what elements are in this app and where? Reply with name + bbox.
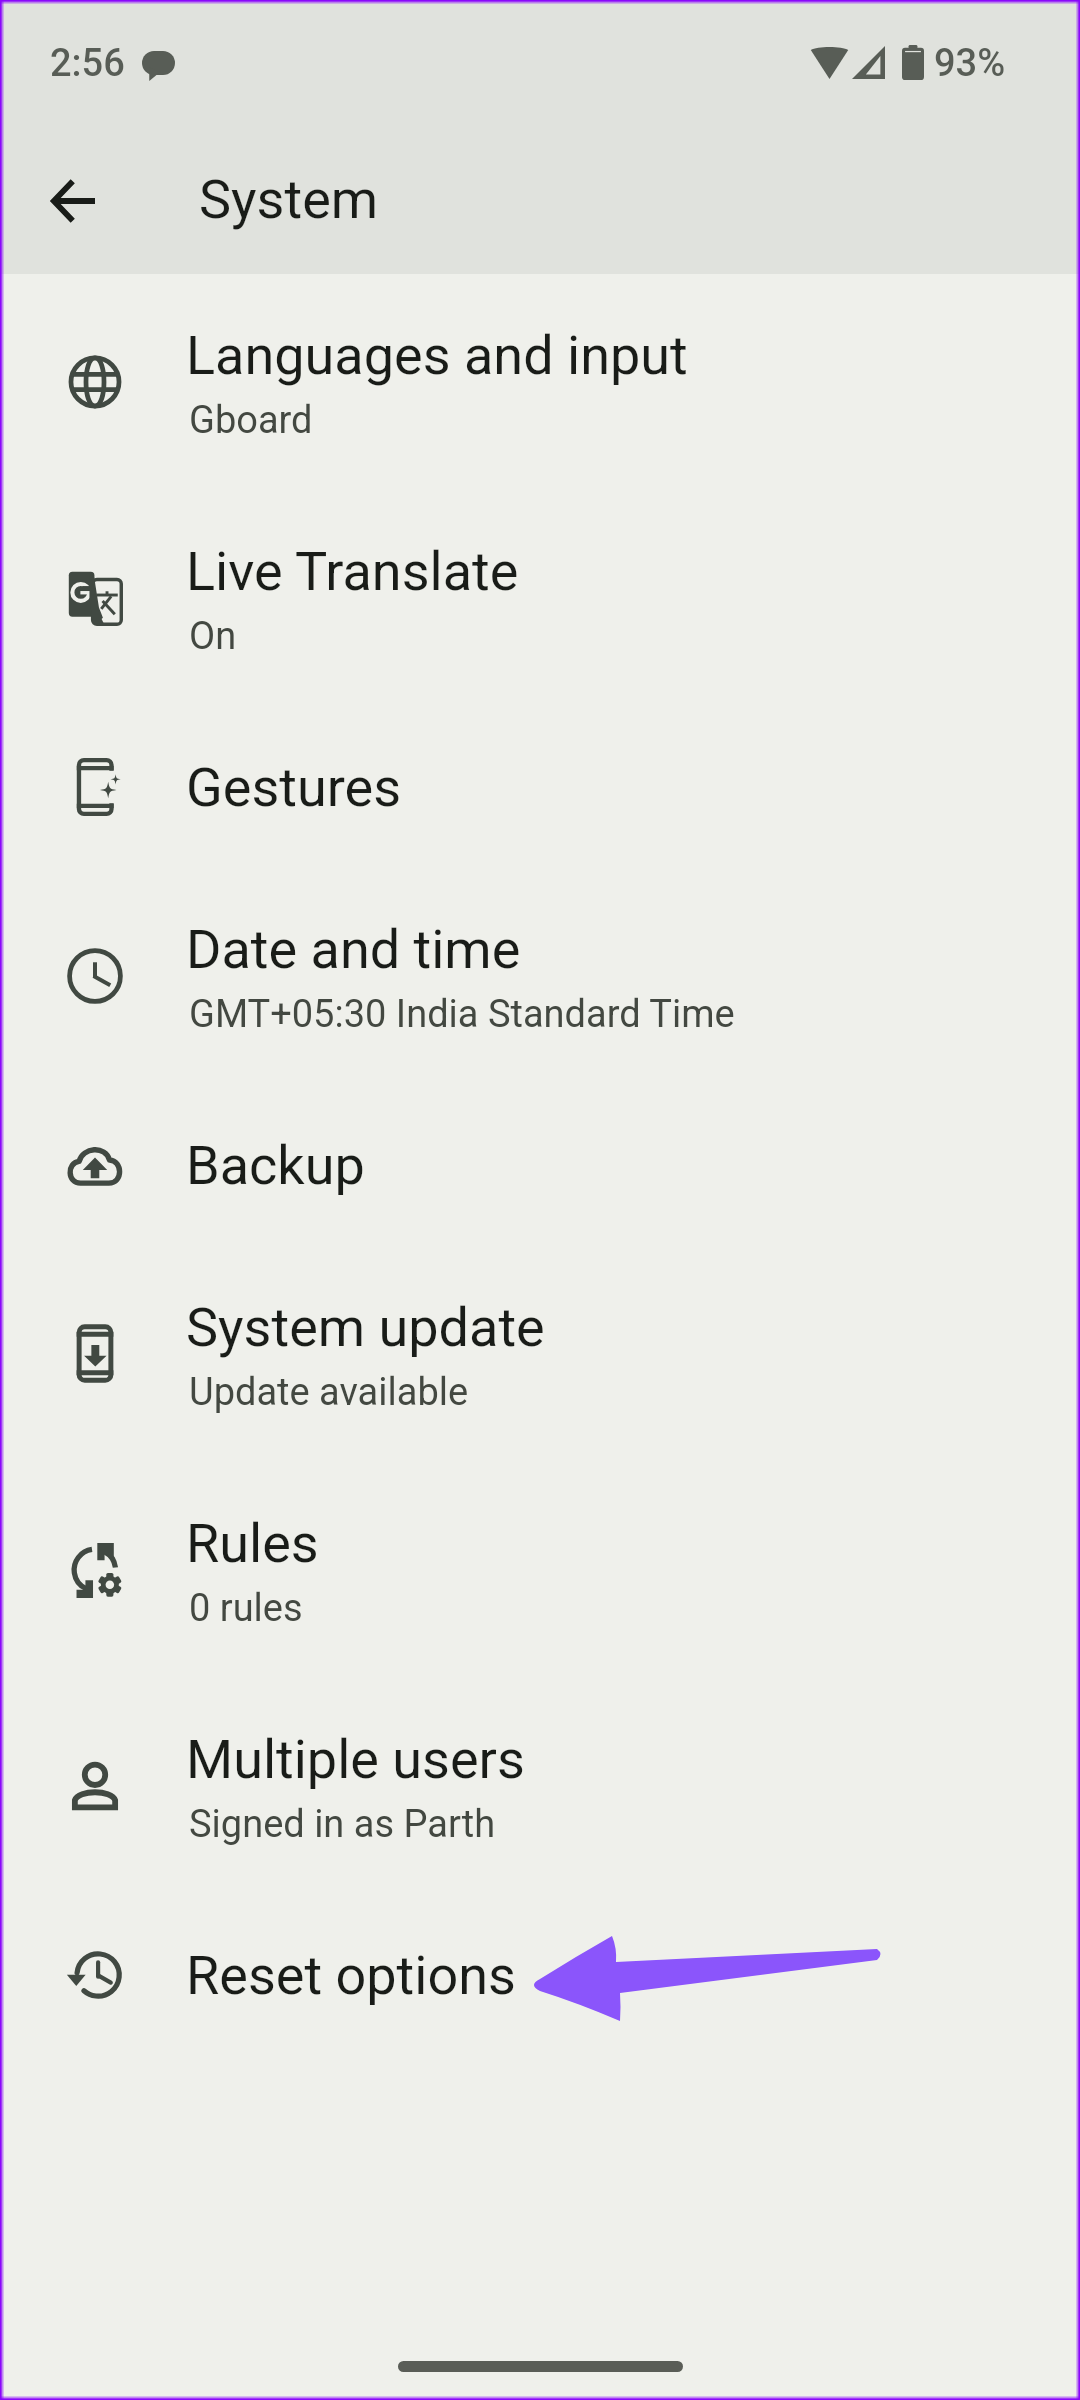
staticText: Gboard xyxy=(189,398,313,443)
staticText: Update available xyxy=(189,1370,469,1415)
button[interactable]: System update xyxy=(0,1246,1080,1462)
button[interactable]: Backup xyxy=(0,1084,1080,1246)
staticText: GMT+05:30 India Standard Time xyxy=(189,992,735,1037)
staticText: Languages and input xyxy=(186,324,688,387)
button[interactable]: Reset options xyxy=(0,1894,1080,2056)
button[interactable]: Back xyxy=(19,146,129,256)
staticText: Live Translate xyxy=(186,540,519,603)
staticText: System xyxy=(199,168,379,231)
staticText: System update xyxy=(186,1296,545,1359)
staticText: Rules xyxy=(186,1512,319,1575)
staticText: Backup xyxy=(186,1134,365,1197)
button[interactable]: Multiple users xyxy=(0,1678,1080,1894)
staticText: Reset options xyxy=(186,1944,516,2007)
staticText: On xyxy=(189,614,237,659)
staticText: Multiple users xyxy=(186,1728,525,1791)
staticText: Date and time xyxy=(186,918,521,981)
staticText: Signed in as Parth xyxy=(189,1802,496,1847)
staticText: Gestures xyxy=(186,756,402,819)
button[interactable]: Languages and input xyxy=(0,274,1080,490)
staticText: 93% xyxy=(934,41,1006,86)
button[interactable]: Date and time xyxy=(0,868,1080,1084)
staticText: 0 rules xyxy=(189,1586,303,1631)
button[interactable]: Live Translate xyxy=(0,490,1080,706)
button[interactable]: Rules xyxy=(0,1462,1080,1678)
button[interactable]: Gestures xyxy=(0,706,1080,868)
staticText: 2:56 xyxy=(50,41,125,86)
